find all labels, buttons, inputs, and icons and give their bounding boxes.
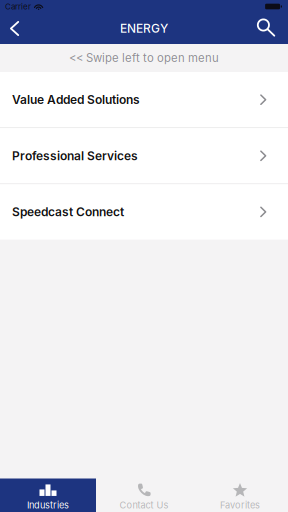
staticText: Favorites xyxy=(220,500,260,511)
button[interactable]: Favorites xyxy=(192,478,288,512)
staticText: Value Added Solutions xyxy=(12,92,140,107)
button[interactable]: Back xyxy=(0,13,29,44)
staticText: Professional Services xyxy=(12,148,138,163)
staticText: Industries xyxy=(27,500,69,511)
button[interactable]: Professional Services xyxy=(0,128,288,183)
button[interactable]: Contact Us xyxy=(96,478,192,512)
button[interactable]: Speedcast Connect xyxy=(0,184,288,240)
staticText: << Swipe left to open menu xyxy=(69,51,219,65)
staticText: ENERGY xyxy=(120,21,168,36)
button[interactable]: Industries xyxy=(0,478,96,512)
staticText: Speedcast Connect xyxy=(12,205,124,219)
staticText: Carrier xyxy=(5,2,31,11)
button[interactable]: Search xyxy=(248,13,284,44)
button[interactable]: Value Added Solutions xyxy=(0,72,288,127)
staticText: Contact Us xyxy=(119,500,168,511)
